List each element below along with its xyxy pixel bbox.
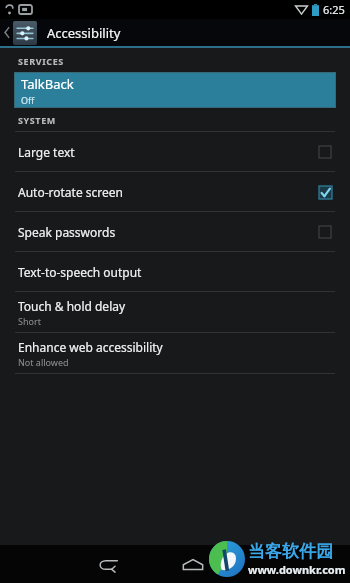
staticText: Auto-rotate screen — [18, 184, 318, 200]
staticText: Short — [18, 315, 41, 327]
staticText: Large text — [18, 144, 318, 160]
button[interactable]: Large text — [0, 132, 350, 171]
button[interactable]: Back — [88, 547, 126, 581]
staticText: SERVICES — [18, 55, 64, 67]
button[interactable]: Speak passwords — [0, 212, 350, 251]
staticText: Text-to-speech output — [18, 264, 142, 280]
staticText: Off — [21, 94, 35, 106]
staticText: TalkBack — [21, 75, 74, 93]
button[interactable]: Text-to-speech output — [0, 252, 350, 291]
staticText: SYSTEM — [18, 114, 56, 126]
button[interactable]: Touch & hold delay — [0, 292, 350, 332]
button[interactable]: Enhance web accessibility — [0, 333, 350, 373]
staticText: Not allowed — [18, 356, 69, 368]
button[interactable]: Navigate up — [0, 19, 350, 46]
button[interactable]: Home — [174, 547, 212, 581]
staticText: 6:25 — [323, 2, 345, 17]
button[interactable]: Auto-rotate screen — [0, 172, 350, 211]
staticText: Enhance web accessibility — [18, 339, 163, 355]
staticText: Accessibility — [47, 24, 121, 42]
button[interactable]: TalkBack — [15, 73, 335, 107]
staticText: Touch & hold delay — [18, 298, 126, 314]
staticText: 当客软件园 — [248, 541, 333, 562]
staticText: Speak passwords — [18, 224, 318, 240]
staticText: www.downkr.com — [248, 562, 346, 577]
